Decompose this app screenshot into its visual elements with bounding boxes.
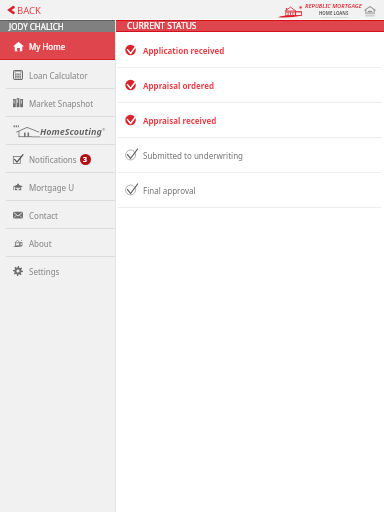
button[interactable]: Appraisal received (116, 103, 384, 138)
staticText: 3 (83, 155, 88, 165)
button[interactable]: Settings (0, 257, 115, 285)
staticText: REPUBLIC MORTGAGE (305, 2, 362, 10)
button[interactable]: About (0, 229, 115, 257)
button[interactable]: Notifications (0, 145, 115, 173)
staticText: Loan Calculator (29, 70, 88, 81)
staticText: Appraisal received (143, 115, 217, 126)
staticText: Market Snapshot (29, 98, 94, 109)
staticText: ® (102, 127, 106, 132)
button[interactable]: Market Snapshot (0, 89, 115, 117)
button[interactable]: Appraisal ordered (116, 68, 384, 103)
staticText: CURRENT STATUS (127, 20, 197, 32)
staticText: JODY CHALICH (9, 21, 64, 32)
button[interactable]: BACK (0, 1, 47, 20)
staticText: Settings (29, 266, 60, 277)
staticText: Submitted to underwriting (143, 150, 243, 161)
button[interactable]: Final approval (116, 173, 384, 208)
staticText: Final approval (143, 185, 196, 196)
staticText: Contact (29, 210, 58, 221)
button[interactable]: My Home (0, 32, 115, 60)
staticText: BACK (17, 4, 41, 17)
button[interactable]: Loan Calculator (0, 61, 115, 89)
button[interactable]: Mortgage U (0, 173, 115, 201)
button[interactable]: Submitted to underwriting (116, 138, 384, 173)
button[interactable]: HomeScouting (0, 117, 115, 145)
staticText: A Division of Republic Bank (320, 16, 348, 19)
button[interactable]: Contact (0, 201, 115, 229)
button[interactable]: Application received (116, 33, 384, 68)
staticText: Notifications (29, 154, 77, 165)
staticText: About (29, 238, 52, 249)
staticText: Mortgage U (29, 182, 75, 193)
staticText: Application received (143, 45, 225, 56)
staticText: My Home (29, 41, 66, 52)
staticText: HomeScouting (40, 125, 102, 137)
staticText: Appraisal ordered (143, 80, 215, 91)
staticText: HOME LOANS (319, 10, 349, 16)
